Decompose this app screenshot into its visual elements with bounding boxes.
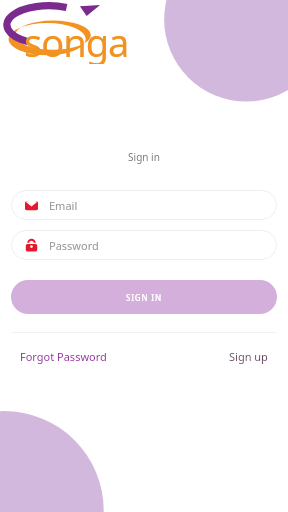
other: Password (25, 239, 38, 252)
other: Email (25, 199, 38, 212)
button[interactable]: Email (11, 190, 277, 220)
button[interactable]: Forgot Password (18, 346, 109, 367)
staticText: Password (49, 238, 99, 253)
staticText: Forgot Password (20, 349, 107, 364)
staticText: songa (24, 16, 129, 64)
button[interactable]: Password (11, 230, 277, 260)
button[interactable]: SIGN IN (11, 280, 277, 314)
staticText: Sign in (0, 150, 288, 164)
staticText: SIGN IN (126, 292, 162, 303)
staticText: Email (49, 198, 78, 213)
button[interactable]: Sign up (227, 346, 270, 367)
staticText: Sign up (229, 349, 268, 364)
